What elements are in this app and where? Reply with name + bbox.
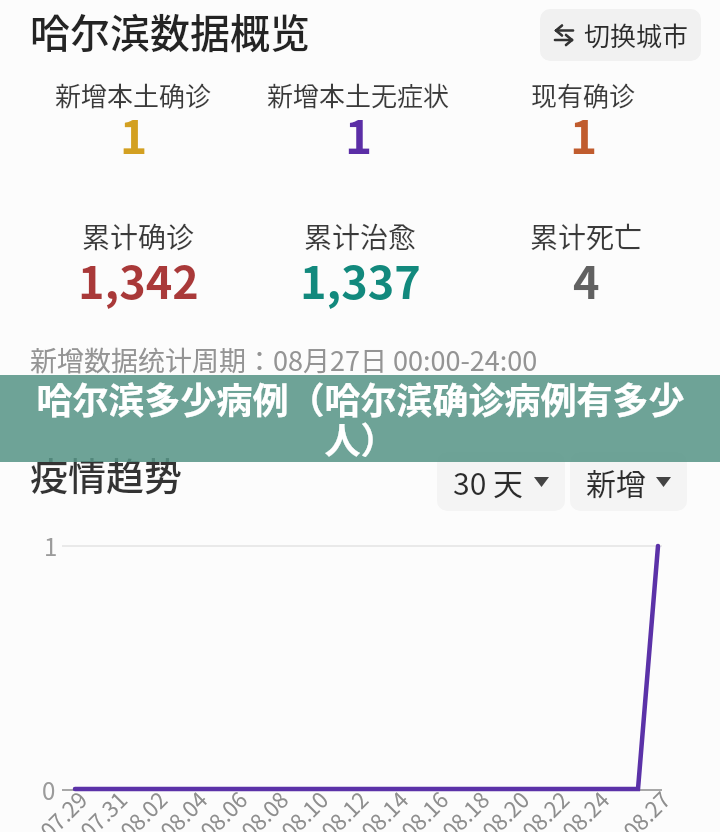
staticText: 1,342 bbox=[78, 247, 199, 312]
staticText: 1 bbox=[44, 528, 58, 563]
staticText: 1 bbox=[570, 101, 598, 168]
button[interactable]: 新增 bbox=[570, 452, 687, 511]
button[interactable]: 哈尔滨多少病例（哈尔滨确诊病例有多少 人） bbox=[0, 375, 720, 462]
staticText: 08.20 bbox=[474, 783, 535, 832]
staticText: 07.31 bbox=[72, 783, 133, 832]
staticText: 08.16 bbox=[393, 783, 454, 832]
staticText: 新增 bbox=[586, 460, 646, 503]
staticText: 新增本土确诊 bbox=[55, 76, 212, 114]
staticText: 新增数据统计周期：08月27日 00:00-24:00 bbox=[30, 340, 538, 379]
staticText: 08.12 bbox=[313, 783, 374, 832]
staticText: 切换城市 bbox=[584, 16, 689, 54]
staticText: 疫情趋势 bbox=[30, 446, 183, 501]
staticText: 07.29 bbox=[32, 783, 93, 832]
staticText: 1,337 bbox=[300, 247, 421, 312]
staticText: 1 bbox=[120, 101, 148, 168]
button[interactable]: 30 天 bbox=[437, 452, 565, 511]
staticText: 08.02 bbox=[112, 783, 173, 832]
staticText: 哈尔滨多少病例（哈尔滨确诊病例有多少 人） bbox=[36, 372, 685, 459]
staticText: 0 bbox=[42, 772, 56, 807]
staticText: 累计确诊 bbox=[82, 216, 195, 257]
staticText: 08.08 bbox=[233, 783, 294, 832]
staticText: 30 天 bbox=[453, 460, 524, 503]
staticText: 08.18 bbox=[434, 783, 495, 832]
staticText: 累计治愈 bbox=[304, 216, 417, 257]
staticText: 累计死亡 bbox=[530, 216, 643, 257]
staticText: 08.04 bbox=[152, 783, 213, 832]
staticText: 新增本土无症状 bbox=[267, 76, 450, 114]
staticText: 现有确诊 bbox=[531, 76, 636, 114]
staticText: 08.10 bbox=[273, 783, 334, 832]
staticText: 08.14 bbox=[353, 783, 414, 832]
staticText: 4 bbox=[573, 247, 600, 312]
staticText: 哈尔滨数据概览 bbox=[30, 2, 310, 60]
staticText: 08.22 bbox=[514, 783, 575, 832]
staticText: 08.06 bbox=[192, 783, 253, 832]
staticText: 08.24 bbox=[554, 783, 615, 832]
button[interactable]: 切换城市 bbox=[540, 9, 701, 61]
staticText: 08.27 bbox=[615, 783, 676, 832]
staticText: 1 bbox=[345, 101, 373, 168]
